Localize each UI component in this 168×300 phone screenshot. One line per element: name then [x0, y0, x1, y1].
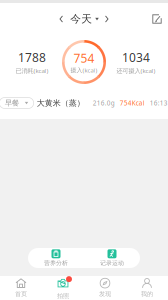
staticText: 早餐	[5, 98, 19, 108]
button[interactable]: 今天	[53, 8, 115, 30]
staticText: 我的	[141, 290, 153, 298]
staticText: 大黄米（蒸）	[37, 98, 85, 108]
staticText: 摄入(kcal)	[70, 66, 97, 74]
staticText: 首页	[15, 290, 27, 298]
staticText: 今天	[70, 12, 92, 26]
button[interactable]: 我的	[126, 276, 168, 300]
staticText: 1788	[18, 49, 46, 65]
staticText: 1034	[122, 49, 150, 65]
button[interactable]: 拍照	[42, 276, 84, 300]
staticText: 还可摄入(kcal)	[116, 66, 155, 75]
staticText: 754	[73, 50, 94, 66]
button[interactable]: 营养分析	[28, 248, 84, 268]
staticText: 营养分析	[44, 259, 68, 267]
button[interactable]: 记录运动	[84, 248, 140, 268]
button[interactable]: 记录饮食	[147, 10, 167, 28]
staticText: 754Kcal	[120, 99, 145, 107]
staticText: 发现	[99, 290, 111, 298]
staticText: 已消耗(kcal)	[15, 66, 48, 75]
button[interactable]: 早餐	[0, 87, 168, 119]
button[interactable]: 发现	[84, 276, 126, 300]
staticText: 16:13	[150, 99, 168, 107]
staticText: 216.0g	[93, 99, 115, 107]
button[interactable]: 首页	[0, 276, 42, 300]
staticText: 记录运动	[100, 259, 124, 267]
staticText: 拍照	[57, 292, 69, 300]
